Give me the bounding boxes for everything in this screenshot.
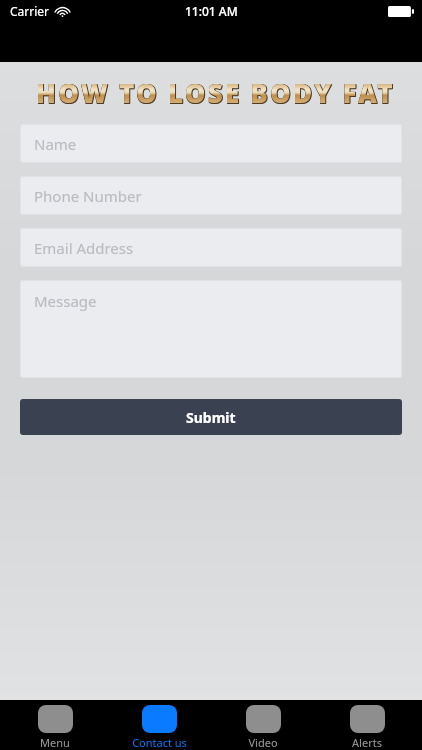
staticText: Contact us — [132, 735, 187, 750]
button[interactable]: Phone Number — [20, 176, 402, 215]
staticText: 11:01 AM — [185, 3, 238, 19]
button[interactable]: Submit — [20, 399, 402, 435]
staticText: Phone Number — [34, 186, 142, 206]
staticText: Message — [34, 291, 97, 311]
button[interactable]: Video — [214, 700, 312, 750]
button[interactable]: Email Address — [20, 228, 402, 267]
staticText: Submit — [186, 408, 236, 427]
staticText: HOW TO LOSE BODY FAT — [36, 76, 395, 111]
staticText: Video — [248, 735, 278, 750]
button[interactable]: Contact us — [110, 700, 208, 750]
staticText: Carrier — [10, 3, 50, 19]
staticText: Menu — [40, 735, 70, 750]
staticText: Email Address — [34, 238, 134, 258]
button[interactable]: Name — [20, 124, 402, 163]
staticText: HOW TO LOSE BODY FAT — [36, 75, 395, 110]
staticText: Name — [34, 134, 77, 154]
staticText: HOW TO LOSE BODY FAT — [37, 75, 396, 110]
button[interactable]: Message — [20, 280, 402, 378]
staticText: HOW TO LOSE BODY FAT — [36, 75, 395, 110]
staticText: Alerts — [352, 735, 382, 750]
staticText: HOW TO LOSE BODY FAT — [37, 76, 396, 111]
staticText: HOW TO LOSE BODY FAT — [36, 75, 395, 110]
button[interactable]: Menu — [6, 700, 104, 750]
staticText: HOW TO LOSE BODY FAT — [36, 76, 395, 111]
button[interactable]: Alerts — [318, 700, 416, 750]
